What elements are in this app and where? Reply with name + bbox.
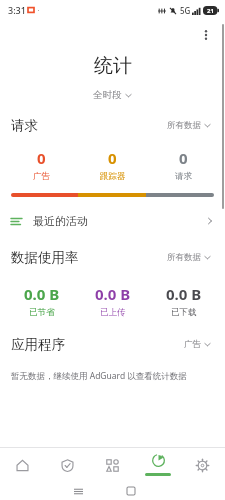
staticText: 应用程序 [11,336,65,353]
staticText: 21 [207,7,214,15]
staticText: 3:31 [8,4,26,16]
button[interactable]: 所有数据 [164,250,214,265]
staticText: 0 [37,148,46,168]
staticText: 请求 [11,117,38,134]
staticText: 0 [108,148,117,168]
staticText: 跟踪器 [100,171,126,182]
button[interactable]: Settings [180,448,225,482]
button[interactable]: 0 [77,148,148,182]
staticText: 全时段 [93,89,122,101]
button[interactable]: Apps [90,448,135,482]
button[interactable]: 0.0 B [77,284,148,318]
staticText: 0 [179,148,188,168]
button[interactable]: 所有数据 [164,118,214,133]
staticText: 最近的活动 [33,214,88,228]
button[interactable]: More options [193,22,219,48]
button[interactable]: Home [112,482,150,500]
staticText: 5G [180,5,191,16]
button[interactable]: 广告 [181,337,214,352]
button[interactable]: 0 [6,148,77,182]
staticText: 已上传 [100,307,126,318]
staticText: 已下载 [171,307,197,318]
staticText: 0.0 B [166,284,202,304]
button[interactable]: Home [0,448,45,482]
button[interactable]: Statistics [135,448,180,482]
button[interactable]: 0.0 B [148,284,219,318]
button[interactable]: Protection [45,448,90,482]
staticText: 数据使用率 [11,249,79,266]
staticText: 所有数据 [167,252,201,263]
staticText: 0.0 B [95,284,131,304]
button[interactable]: 0.0 B [6,284,77,318]
staticText: 广告 [33,171,50,182]
staticText: 0.0 B [24,284,60,304]
button[interactable]: 全时段 [87,87,138,103]
staticText: 统计 [94,54,132,78]
button[interactable]: Recents [59,482,97,500]
button[interactable]: 0 [148,148,219,182]
staticText: 请求 [175,171,192,182]
button[interactable]: 最近的活动 [0,207,225,235]
staticText: 已节省 [29,307,55,318]
staticText: 所有数据 [167,120,201,131]
staticText: 广告 [184,339,201,350]
staticText: 暂无数据，继续使用 AdGuard 以查看统计数据 [11,370,187,382]
